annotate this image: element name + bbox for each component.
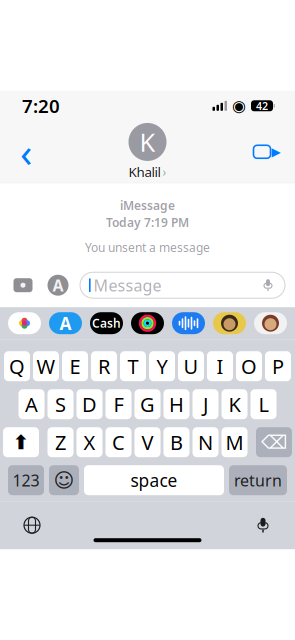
button[interactable]: Apple Cash <box>90 312 123 334</box>
button[interactable]: G <box>134 389 160 419</box>
button[interactable]: App Store <box>49 312 82 334</box>
button[interactable]: Y <box>149 351 175 381</box>
staticText: 42 <box>256 99 268 113</box>
button[interactable]: Fitness <box>131 312 164 334</box>
staticText: K <box>139 125 155 159</box>
staticText: P <box>272 353 284 379</box>
staticText: M <box>225 429 243 455</box>
staticText: O <box>241 353 257 379</box>
button[interactable]: Switch keyboard <box>12 508 52 542</box>
button[interactable]: V <box>134 427 160 457</box>
staticText: space <box>130 469 177 492</box>
staticText: Cash <box>92 315 121 331</box>
staticText: Today 7:19 PM <box>106 214 189 230</box>
button[interactable]: X <box>76 427 102 457</box>
staticText: Y <box>156 353 167 379</box>
button[interactable]: Memoji sticker <box>254 312 287 334</box>
button[interactable]: K <box>221 389 247 419</box>
staticText: Q <box>9 353 25 379</box>
staticText: ▶ <box>271 145 280 159</box>
button[interactable]: I <box>207 351 233 381</box>
staticText: D <box>82 391 97 417</box>
button[interactable]: O <box>236 351 262 381</box>
button[interactable]: F <box>105 389 131 419</box>
button[interactable]: E <box>62 351 88 381</box>
button[interactable]: Back <box>6 130 46 174</box>
staticText: Khalil <box>128 163 160 181</box>
staticText: J <box>203 391 208 417</box>
staticText: Message <box>94 275 162 296</box>
staticText: U <box>183 353 198 379</box>
staticText: iMessage <box>120 197 175 213</box>
staticText: X <box>83 429 95 455</box>
button[interactable]: Shift <box>3 427 39 457</box>
button[interactable]: return <box>229 465 287 495</box>
staticText: B <box>170 429 183 455</box>
button[interactable]: Apps <box>45 272 71 298</box>
staticText: I <box>216 353 223 379</box>
staticText: K <box>228 391 240 417</box>
staticText: N <box>198 429 213 455</box>
staticText: F <box>113 391 123 417</box>
staticText: H <box>169 391 184 417</box>
button[interactable]: S <box>47 389 73 419</box>
button[interactable]: Message field <box>80 272 285 298</box>
staticText: Z <box>55 429 66 455</box>
staticText: A <box>59 312 71 335</box>
button[interactable]: Dictation <box>243 508 283 542</box>
button[interactable]: W <box>33 351 59 381</box>
staticText: A <box>52 275 63 296</box>
staticText: E <box>69 353 80 379</box>
button[interactable]: T <box>120 351 146 381</box>
button[interactable]: U <box>178 351 204 381</box>
staticText: L <box>258 391 268 417</box>
staticText: ⌫ <box>261 432 287 453</box>
staticText: ⬆ <box>12 431 29 454</box>
staticText: ◉ <box>232 97 246 115</box>
staticText: › <box>162 164 166 180</box>
staticText: W <box>36 353 55 379</box>
staticText: C <box>112 429 125 455</box>
button[interactable]: B <box>163 427 189 457</box>
button[interactable]: Photos <box>8 312 41 334</box>
button[interactable]: A <box>18 389 44 419</box>
staticText: 7:20 <box>22 93 60 118</box>
button[interactable]: Khalil contact details <box>128 123 166 181</box>
staticText: ‹ <box>20 125 32 178</box>
button[interactable]: L <box>250 389 276 419</box>
button[interactable]: D <box>76 389 102 419</box>
staticText: T <box>127 353 138 379</box>
button[interactable]: N <box>192 427 218 457</box>
button[interactable]: C <box>105 427 131 457</box>
button[interactable]: space <box>84 465 224 495</box>
button[interactable]: Audio message <box>172 312 205 334</box>
staticText: You unsent a message <box>85 239 210 255</box>
staticText: ☺ <box>53 469 74 492</box>
button[interactable]: Delete <box>256 427 292 457</box>
button[interactable]: Camera <box>10 272 36 298</box>
button[interactable]: Emoji <box>49 465 79 495</box>
staticText: V <box>141 429 153 455</box>
button[interactable]: Z <box>47 427 73 457</box>
button[interactable]: P <box>265 351 291 381</box>
staticText: R <box>98 353 110 379</box>
staticText: A <box>25 391 38 417</box>
staticText: return <box>234 470 282 491</box>
staticText: 123 <box>12 470 39 491</box>
button[interactable]: Memoji sticker <box>213 312 246 334</box>
button[interactable]: M <box>221 427 247 457</box>
staticText: S <box>55 391 66 417</box>
button[interactable]: Q <box>4 351 30 381</box>
staticText: G <box>140 391 155 417</box>
button[interactable]: J <box>192 389 218 419</box>
button[interactable]: FaceTime <box>245 130 289 174</box>
button[interactable]: H <box>163 389 189 419</box>
button[interactable]: 123 <box>8 465 44 495</box>
button[interactable]: R <box>91 351 117 381</box>
